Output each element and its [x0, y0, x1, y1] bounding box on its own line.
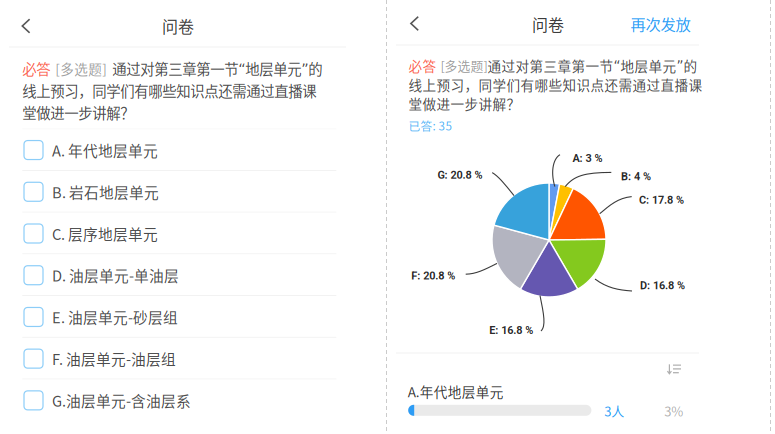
staticText: A.年代地层单元	[408, 381, 504, 401]
staticText: G.油层单元-含油层系	[52, 390, 191, 411]
staticText: A. 年代地层单元	[52, 139, 158, 161]
button[interactable]: Back	[4, 4, 48, 48]
staticText: 问卷	[162, 14, 194, 37]
staticText: E: 16.8 %	[489, 324, 533, 337]
button[interactable]: E. 油层单元-砂层组	[0, 296, 386, 338]
staticText: F: 20.8 %	[411, 269, 455, 282]
button[interactable]: A. 年代地层单元	[0, 129, 386, 171]
staticText: 3%	[664, 401, 683, 420]
staticText: 通过对第三章第一节	[112, 58, 238, 79]
staticText: C: 17.8 %	[639, 193, 684, 206]
staticText: 地层单元	[620, 56, 676, 75]
staticText: D. 油层单元-单油层	[52, 265, 179, 286]
staticText: 堂做进一步讲解？	[22, 102, 134, 123]
button[interactable]: F. 油层单元-油层组	[0, 338, 386, 379]
staticText: [多选题]	[55, 59, 107, 78]
staticText: 的	[308, 58, 322, 79]
staticText: 线上预习，同学们有哪些知识点还需通过直播课	[22, 80, 316, 101]
button[interactable]: 再次发放	[622, 3, 698, 43]
staticText: [多选题]	[440, 56, 487, 75]
staticText: 再次发放	[630, 12, 690, 35]
staticText: 堂做进一步讲解？	[408, 94, 520, 113]
staticText: 的	[683, 56, 697, 75]
staticText: 3人	[604, 401, 624, 420]
staticText: ”	[301, 60, 308, 77]
staticText: B. 岩石地层单元	[52, 181, 159, 202]
staticText: E. 油层单元-砂层组	[52, 306, 178, 327]
button[interactable]: G.油层单元-含油层系	[0, 379, 386, 421]
button[interactable]: C. 层序地层单元	[0, 213, 386, 254]
staticText: “	[613, 58, 620, 73]
staticText: G: 20.8 %	[437, 169, 482, 181]
staticText: 线上预习，同学们有哪些知识点还需通过直播课	[408, 75, 702, 94]
staticText: 地层单元	[245, 58, 301, 79]
button[interactable]: Back	[393, 1, 437, 45]
button[interactable]: B. 岩石地层单元	[0, 171, 386, 213]
staticText: 必答	[22, 58, 50, 79]
staticText: 必答	[408, 56, 436, 75]
staticText: C. 层序地层单元	[52, 223, 158, 244]
button[interactable]: D. 油层单元-单油层	[0, 254, 386, 296]
staticText: ”	[676, 58, 683, 73]
button[interactable]: Sort	[659, 357, 689, 381]
staticText: 问卷	[532, 12, 564, 36]
staticText: 已答: 35	[408, 117, 452, 134]
staticText: D: 16.8 %	[640, 279, 685, 292]
staticText: B: 4 %	[621, 170, 651, 183]
staticText: “	[238, 60, 245, 77]
staticText: 通过对第三章第一节	[487, 56, 613, 75]
staticText: F. 油层单元-油层组	[52, 348, 176, 369]
staticText: A: 3 %	[572, 152, 602, 165]
